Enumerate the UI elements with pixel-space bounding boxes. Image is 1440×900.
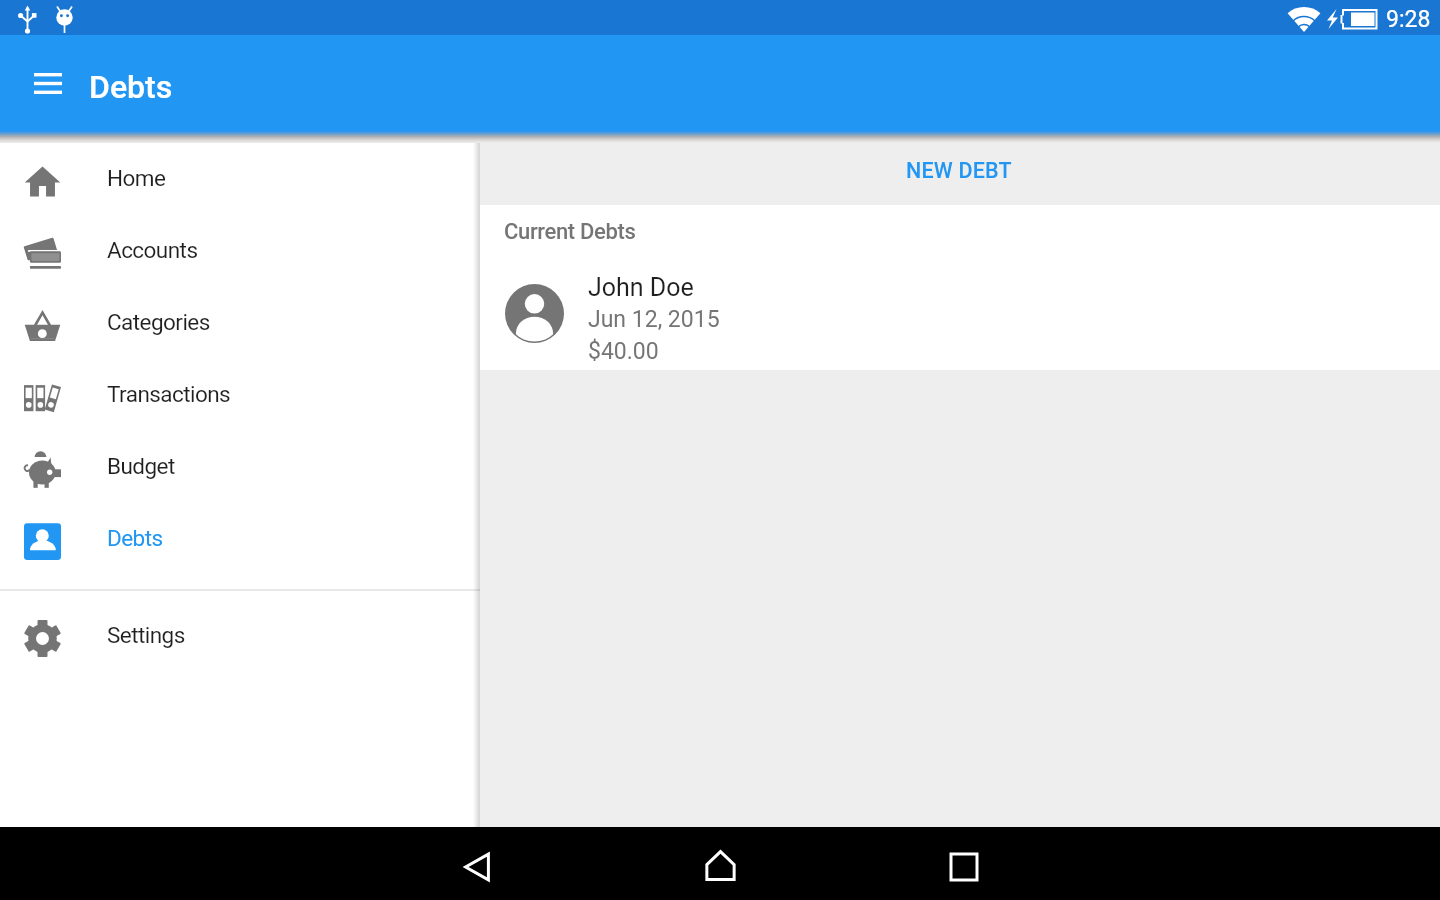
button[interactable]: Debts [0, 502, 480, 574]
button[interactable]: Open navigation drawer [22, 57, 74, 109]
staticText: Accounts [107, 237, 198, 263]
button[interactable]: Home [696, 841, 744, 889]
staticText: NEW DEBT [906, 158, 1012, 183]
button[interactable]: Transactions [0, 358, 480, 430]
staticText: Debts [89, 68, 173, 106]
button[interactable]: Back [453, 843, 501, 891]
staticText: Jun 12, 2015 [588, 306, 720, 333]
staticText: Current Debts [504, 219, 636, 245]
button[interactable]: Settings [0, 599, 480, 671]
staticText: Settings [107, 622, 185, 648]
button[interactable]: NEW DEBT [888, 144, 1030, 197]
button[interactable]: John Doe [480, 267, 1440, 347]
staticText: Budget [107, 453, 175, 479]
button[interactable]: Categories [0, 286, 480, 358]
staticText: Debts [107, 525, 163, 551]
staticText: 9:28 [1386, 6, 1431, 33]
button[interactable]: Budget [0, 430, 480, 502]
staticText: Home [107, 165, 166, 191]
staticText: Categories [107, 309, 210, 335]
staticText: John Doe [588, 273, 694, 302]
button[interactable]: Recent apps [940, 843, 988, 891]
button[interactable]: Accounts [0, 214, 480, 286]
button[interactable]: Home [0, 142, 480, 214]
staticText: Transactions [107, 381, 231, 407]
staticText: $40.00 [588, 338, 659, 362]
